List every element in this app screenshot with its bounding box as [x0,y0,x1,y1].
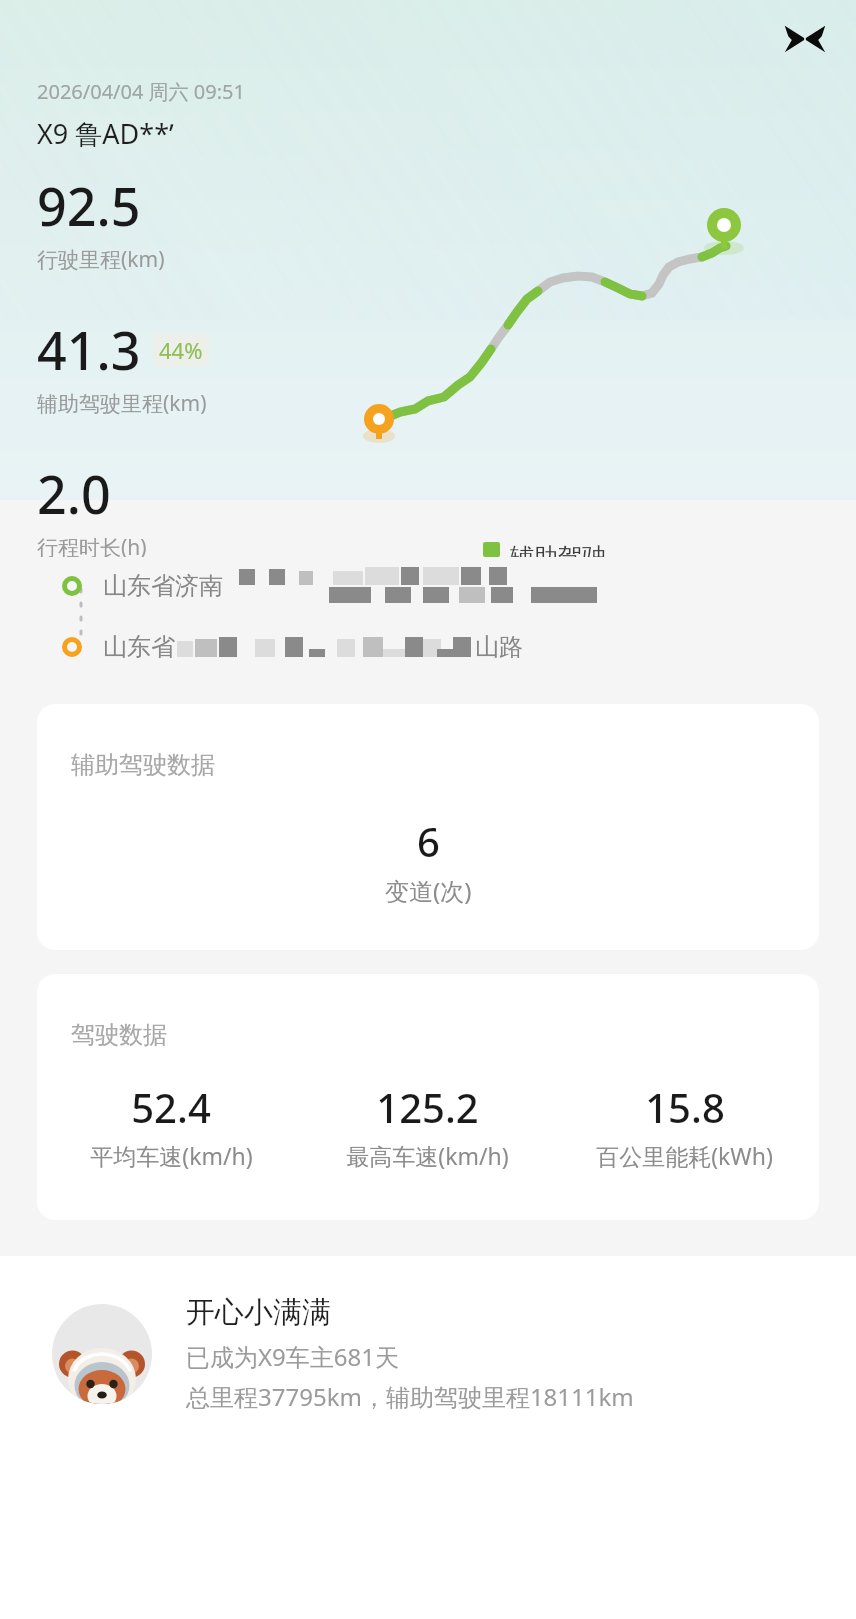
staticText: 山东省 [103,632,175,662]
staticText: 行程时长(h) [37,533,147,557]
staticText: 山路 [475,632,523,662]
button[interactable]: 驾驶数据 [37,974,819,1220]
staticText: 41.3 [37,314,141,385]
staticText: 2026/04/04 周六 09:51 [37,78,245,105]
staticText: 百公里能耗(kWh) [596,1140,773,1171]
staticText: 44% [159,335,203,365]
staticText: 最高车速(km/h) [346,1140,509,1171]
button[interactable]: User avatar [52,1294,832,1413]
staticText: 15.8 [645,1080,725,1134]
staticText: 6 [417,814,440,868]
button[interactable]: XPeng logo [782,16,828,62]
staticText: 辅助驾驶 [510,542,606,557]
staticText: 行驶里程(km) [37,245,165,274]
staticText: 平均车速(km/h) [90,1140,253,1171]
staticText: 辅助驾驶里程(km) [37,389,207,418]
staticText: 92.5 [37,170,141,241]
button[interactable]: 山东省 [62,629,856,665]
staticText: 开心小满满 [186,1294,331,1331]
other: User avatar [52,1304,152,1404]
staticText: 52.4 [131,1080,211,1134]
staticText: 辅助驾驶数据 [71,750,215,780]
button[interactable]: 山东省济南 [62,563,856,609]
staticText: 总里程37795km，辅助驾驶里程18111km [186,1380,634,1413]
staticText: 变道(次) [385,874,472,907]
staticText: 125.2 [376,1080,479,1134]
staticText: 已成为X9车主681天 [186,1340,399,1373]
staticText: 驾驶数据 [71,1020,167,1050]
staticText: 山东省济南 [103,571,223,601]
staticText: X9 鲁AD**ʼ [37,115,174,152]
button[interactable]: 辅助驾驶数据 [37,704,819,950]
staticText: 2.0 [37,458,111,529]
